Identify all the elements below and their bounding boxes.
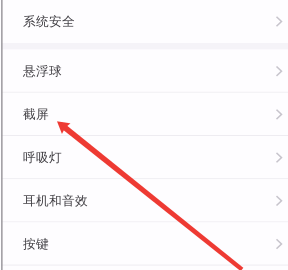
button[interactable]: 截屏 (0, 93, 288, 136)
staticText: 按键 (23, 236, 49, 252)
button[interactable]: 悬浮球 (0, 50, 288, 93)
staticText: 截屏 (23, 106, 49, 122)
button[interactable]: 按键 (0, 222, 288, 266)
staticText: 系统安全 (23, 13, 75, 29)
staticText: 悬浮球 (23, 63, 62, 79)
button[interactable]: 系统安全 (0, 0, 288, 43)
staticText: 呼吸灯 (23, 150, 62, 166)
button[interactable]: 呼吸灯 (0, 136, 288, 179)
staticText: 耳机和音效 (23, 193, 88, 209)
button[interactable]: 耳机和音效 (0, 179, 288, 222)
